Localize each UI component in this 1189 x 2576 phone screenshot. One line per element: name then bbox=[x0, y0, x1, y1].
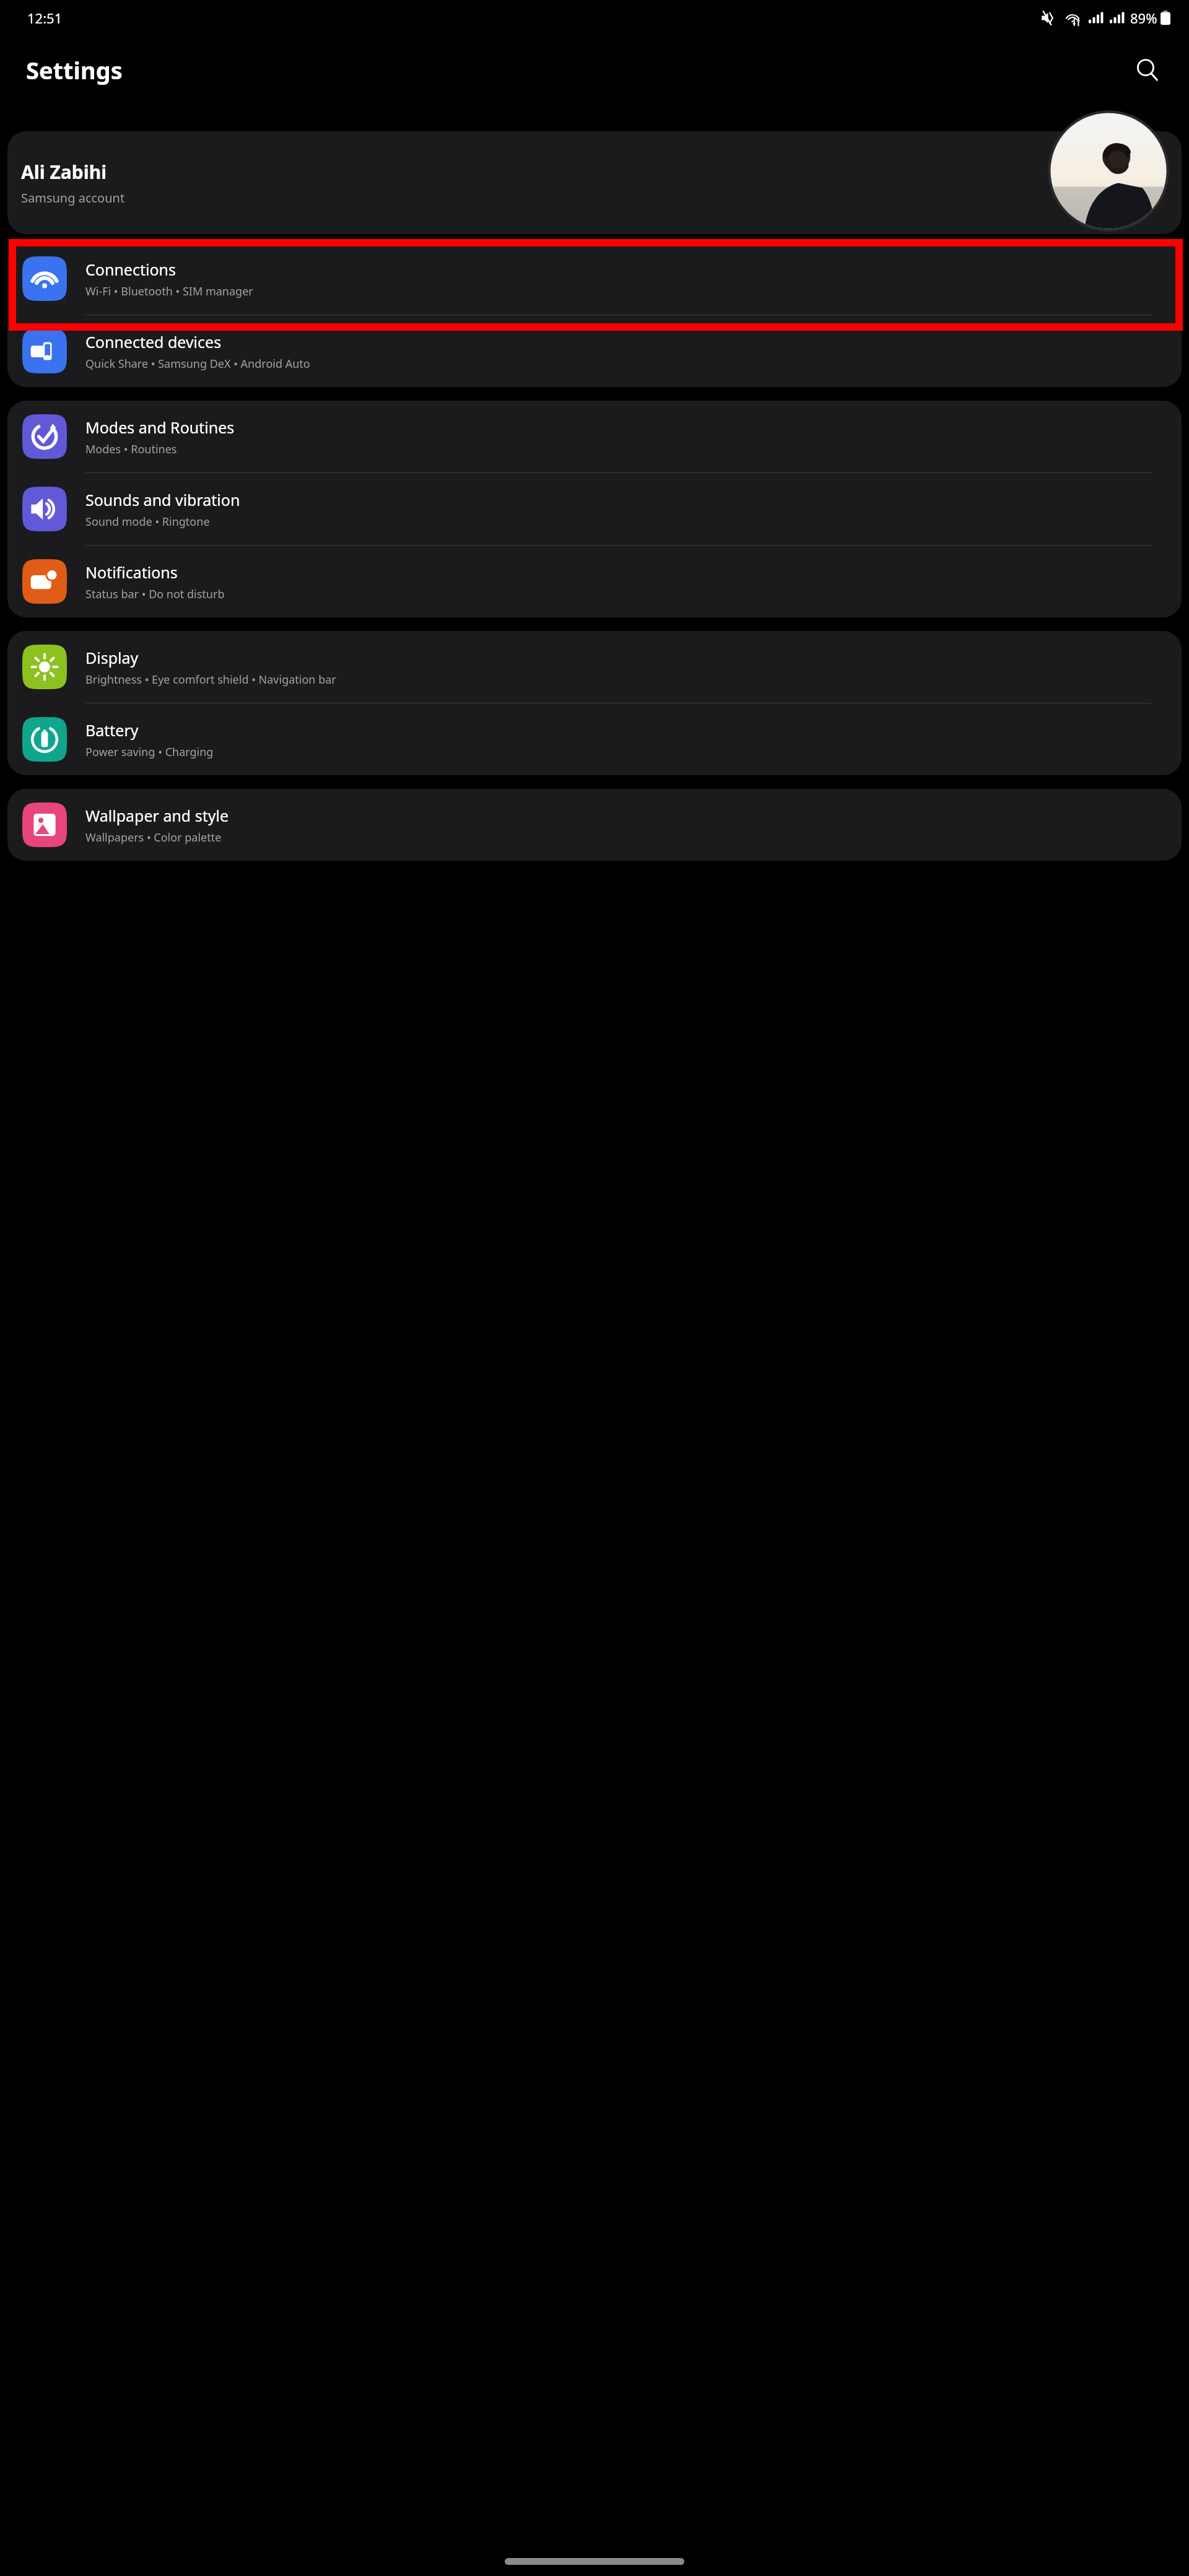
button[interactable]: Ali Zabihi bbox=[7, 131, 1182, 234]
staticText: Modes • Routines bbox=[85, 442, 177, 457]
staticText: Brightness • Eye comfort shield • Naviga… bbox=[85, 672, 336, 687]
button[interactable]: Profile picture bbox=[1048, 110, 1169, 232]
button[interactable]: Sounds and vibration bbox=[7, 473, 1182, 545]
button[interactable]: Connected devices bbox=[7, 315, 1182, 387]
staticText: Power saving • Charging bbox=[85, 744, 214, 760]
staticText: 89% bbox=[1130, 9, 1157, 27]
staticText: Samsung account bbox=[21, 189, 125, 206]
button[interactable]: Modes and Routines bbox=[7, 401, 1182, 472]
staticText: Settings bbox=[26, 54, 123, 86]
staticText: Sound mode • Ringtone bbox=[85, 514, 210, 529]
staticText: Modes and Routines bbox=[85, 417, 235, 438]
staticText: Battery bbox=[85, 720, 139, 741]
button[interactable]: Connections bbox=[7, 243, 1182, 315]
staticText: Sounds and vibration bbox=[85, 489, 240, 510]
staticText: Notifications bbox=[85, 562, 178, 583]
staticText: Quick Share • Samsung DeX • Android Auto bbox=[85, 356, 310, 372]
staticText: Wi-Fi • Bluetooth • SIM manager bbox=[85, 284, 253, 299]
staticText: Connections bbox=[85, 259, 176, 280]
staticText: Display bbox=[85, 647, 139, 668]
staticText: Status bar • Do not disturb bbox=[85, 586, 225, 602]
button[interactable]: Wallpaper and style bbox=[7, 789, 1182, 861]
staticText: Ali Zabihi bbox=[21, 159, 107, 185]
button[interactable]: Display bbox=[7, 631, 1182, 703]
button[interactable]: Search bbox=[1131, 53, 1164, 87]
staticText: Wallpaper and style bbox=[85, 805, 229, 826]
staticText: 12:51 bbox=[27, 9, 63, 27]
button[interactable]: Notifications bbox=[7, 546, 1182, 617]
button[interactable]: Battery bbox=[7, 703, 1182, 775]
staticText: Connected devices bbox=[85, 331, 222, 352]
staticText: Wallpapers • Color palette bbox=[85, 830, 222, 845]
